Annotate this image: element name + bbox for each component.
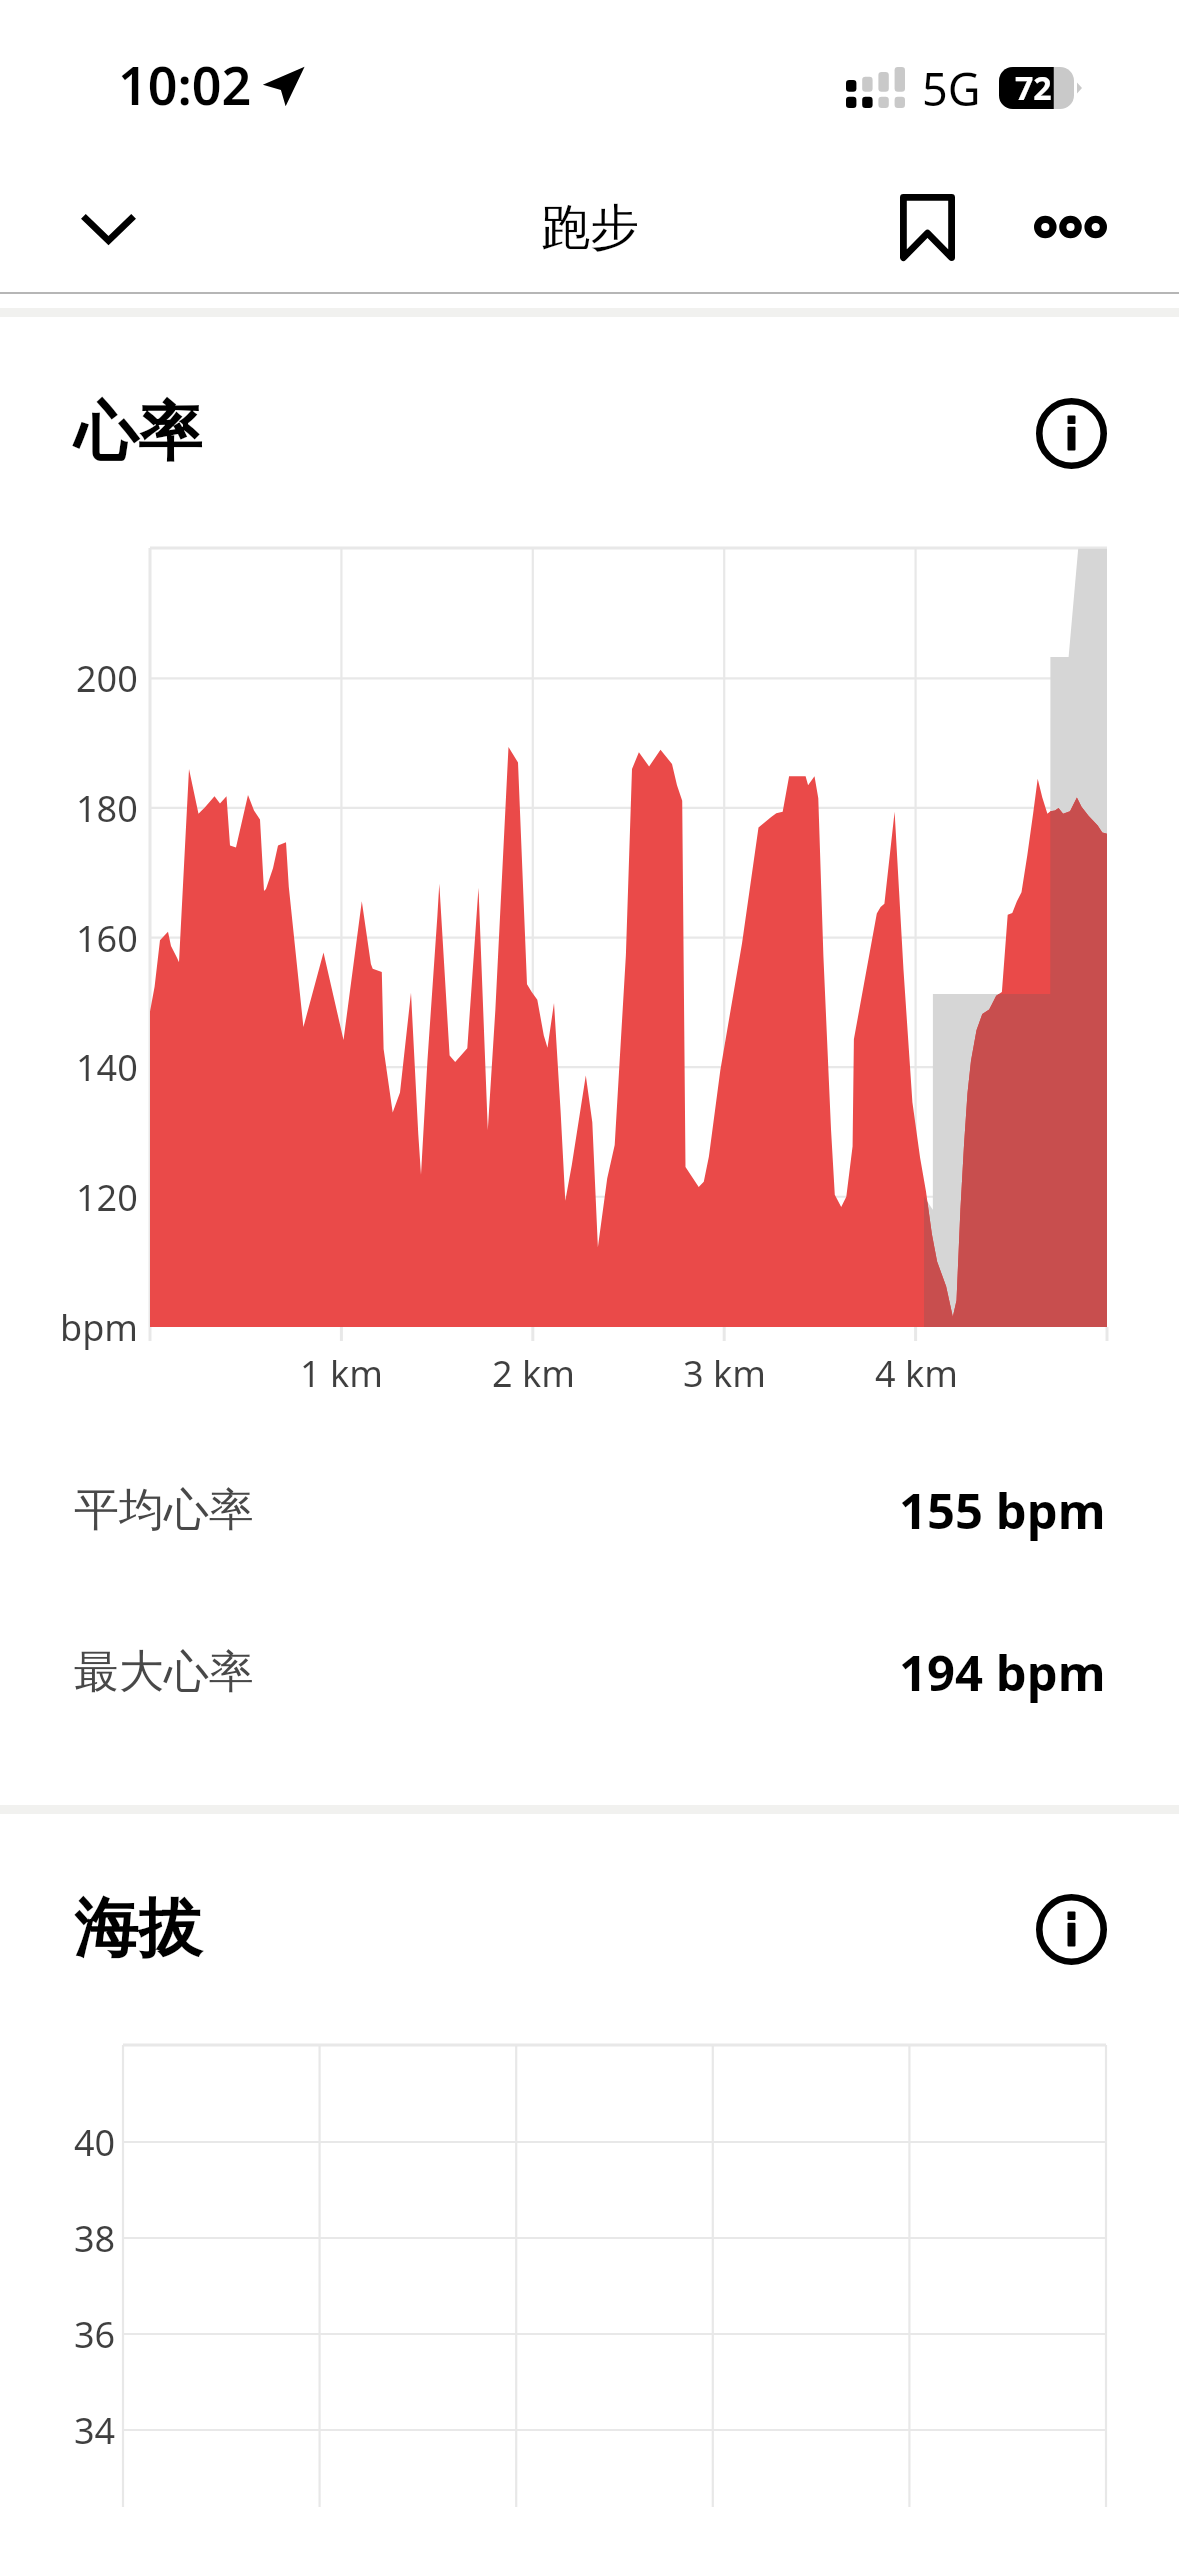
staticText: 海拔 bbox=[74, 1888, 202, 1969]
staticText: 140 bbox=[76, 1043, 138, 1092]
button[interactable]: More options bbox=[1026, 182, 1116, 272]
staticText: 跑步 bbox=[541, 197, 639, 259]
staticText: 平均心率 bbox=[74, 1482, 254, 1539]
button[interactable]: Info about heart rate bbox=[1026, 388, 1116, 478]
staticText: bpm bbox=[60, 1303, 138, 1352]
staticText: 3 km bbox=[683, 1349, 766, 1398]
button[interactable]: Collapse bbox=[52, 172, 164, 284]
staticText: 36 bbox=[74, 2310, 116, 2359]
staticText: 180 bbox=[76, 784, 138, 833]
staticText: 194 bpm bbox=[899, 1639, 1106, 1706]
staticText: 155 bpm bbox=[899, 1477, 1106, 1544]
staticText: 160 bbox=[76, 914, 138, 963]
staticText: 最大心率 bbox=[74, 1644, 254, 1701]
staticText: 1 km bbox=[300, 1349, 383, 1398]
staticText: 5G bbox=[922, 58, 981, 119]
staticText: 4 km bbox=[875, 1349, 958, 1398]
button[interactable]: Info about elevation bbox=[1026, 1884, 1116, 1974]
button[interactable]: Bookmark bbox=[882, 182, 972, 272]
staticText: 200 bbox=[76, 654, 138, 703]
staticText: 10:02 bbox=[118, 49, 252, 120]
staticText: 72 bbox=[1015, 66, 1052, 108]
staticText: 34 bbox=[74, 2406, 116, 2455]
staticText: 心率 bbox=[74, 392, 202, 473]
staticText: 38 bbox=[74, 2214, 116, 2263]
staticText: 2 km bbox=[492, 1349, 575, 1398]
staticText: 120 bbox=[76, 1173, 138, 1222]
staticText: 40 bbox=[74, 2118, 116, 2167]
